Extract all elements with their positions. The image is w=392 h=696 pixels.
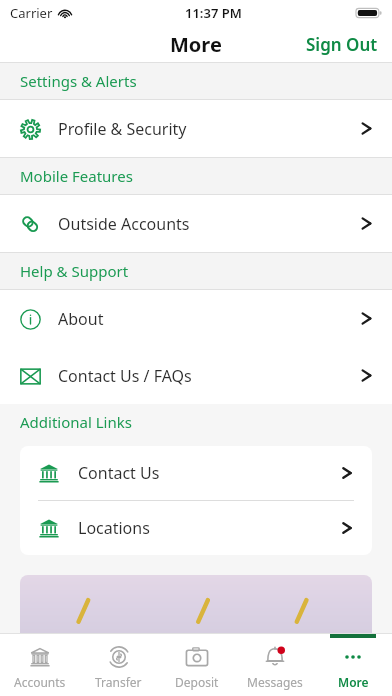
staticText: Messages xyxy=(247,674,303,690)
button[interactable]: More xyxy=(314,634,392,696)
button[interactable]: Settings xyxy=(0,100,392,157)
staticText: Additional Links xyxy=(20,412,132,432)
staticText: Contact Us / FAQs xyxy=(58,365,192,387)
staticText: Mobile Features xyxy=(20,166,133,186)
other: More xyxy=(341,645,365,669)
button[interactable]: Bank xyxy=(0,634,79,696)
staticText: 11:37 PM xyxy=(185,4,242,22)
other: Messages xyxy=(263,645,287,669)
staticText: Profile & Security xyxy=(58,118,187,140)
button[interactable]: Sign Out xyxy=(292,27,392,62)
staticText: Help & Support xyxy=(20,261,129,281)
other: Settings xyxy=(20,119,41,140)
button[interactable]: Link xyxy=(0,195,392,252)
other: Transfer xyxy=(107,645,131,669)
staticText: Carrier xyxy=(10,4,53,22)
staticText: Outside Accounts xyxy=(58,213,190,235)
button[interactable]: Messages xyxy=(236,634,314,696)
staticText: About xyxy=(58,308,104,330)
staticText: Sign Out xyxy=(306,33,378,56)
staticText: Transfer xyxy=(95,674,142,690)
button[interactable]: Bank xyxy=(20,501,372,555)
staticText: More xyxy=(170,31,222,58)
other: Link xyxy=(20,214,40,234)
button[interactable]: Transfer xyxy=(79,634,158,696)
staticText: Deposit xyxy=(175,674,219,690)
button[interactable]: About xyxy=(0,290,392,347)
staticText: Settings & Alerts xyxy=(20,71,137,91)
staticText: Accounts xyxy=(14,674,66,690)
other: Contact xyxy=(20,366,41,387)
staticText: Contact Us xyxy=(78,462,160,484)
staticText: More xyxy=(338,674,369,690)
other: About xyxy=(20,309,41,330)
button[interactable]: Deposit xyxy=(158,634,236,696)
button[interactable]: Bank xyxy=(20,446,372,500)
other: Deposit xyxy=(185,645,209,669)
staticText: Locations xyxy=(78,517,150,539)
other: Bank xyxy=(39,463,59,483)
other: Bank xyxy=(30,647,50,667)
button[interactable]: Contact xyxy=(0,347,392,404)
button[interactable] xyxy=(20,575,372,633)
other: Bank xyxy=(39,518,59,538)
